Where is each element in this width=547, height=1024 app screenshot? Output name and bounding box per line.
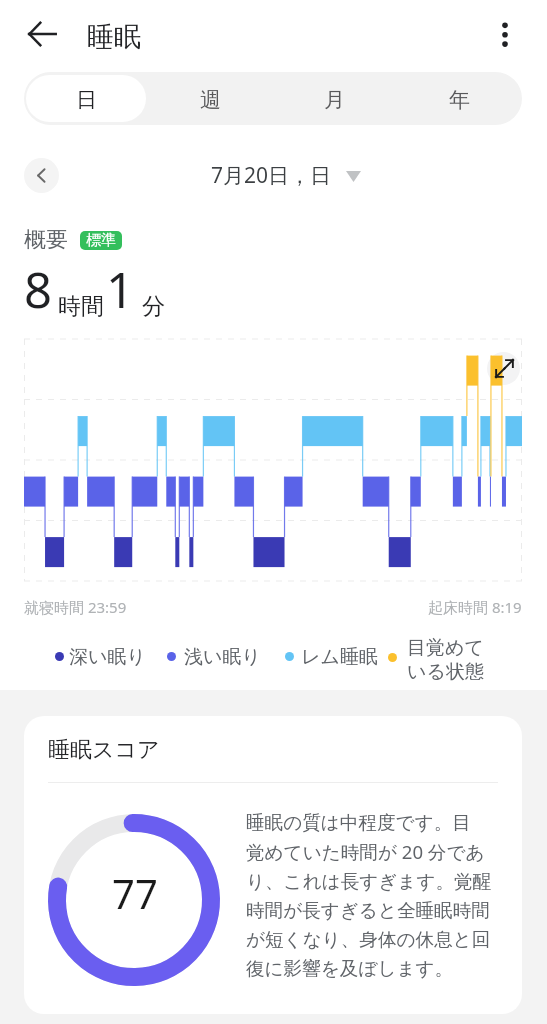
staticText: 睡眠スコア xyxy=(48,736,160,764)
staticText: 概要 xyxy=(24,226,68,254)
staticText: 起床時間 8:19 xyxy=(428,597,522,617)
staticText: 睡眠の質は中程度です。目 覚めていた時間が 20 分であ り、これは長すぎます。… xyxy=(246,811,502,980)
button[interactable]: More options xyxy=(483,12,527,56)
button[interactable]: 年 xyxy=(399,75,520,122)
staticText: 標準 xyxy=(86,231,116,250)
button[interactable]: Previous day xyxy=(24,158,59,193)
button[interactable]: 睡眠スコア xyxy=(24,716,522,1014)
button[interactable]: 目覚めて いる状態 xyxy=(388,636,484,684)
button[interactable] xyxy=(285,652,294,661)
staticText: 目覚めて いる状態 xyxy=(407,636,484,684)
staticText: レム睡眠 xyxy=(301,645,378,669)
button[interactable]: 月 xyxy=(274,75,395,122)
staticText: 睡眠 xyxy=(87,20,141,54)
staticText: 時間 xyxy=(58,292,104,321)
staticText: 77 xyxy=(112,866,158,920)
staticText: 8 xyxy=(24,256,53,323)
staticText: 深い眠り xyxy=(69,645,146,669)
staticText: 分 xyxy=(142,292,165,321)
staticText: 7月20日，日 xyxy=(211,161,332,190)
staticText: 1 xyxy=(106,256,135,323)
staticText: 浅い眠り xyxy=(184,645,261,669)
button[interactable]: Expand chart xyxy=(487,352,520,385)
button[interactable]: 週 xyxy=(150,75,270,122)
button[interactable]: 日 xyxy=(26,75,146,122)
staticText: 月 xyxy=(324,87,345,113)
staticText: 日 xyxy=(76,87,97,113)
staticText: 年 xyxy=(449,87,470,113)
button[interactable]: Back xyxy=(20,12,64,56)
button[interactable] xyxy=(55,652,64,661)
button[interactable]: 7月20日，日 xyxy=(211,161,361,190)
button[interactable] xyxy=(167,652,176,661)
staticText: 就寝時間 23:59 xyxy=(24,597,127,617)
staticText: 週 xyxy=(200,87,221,113)
